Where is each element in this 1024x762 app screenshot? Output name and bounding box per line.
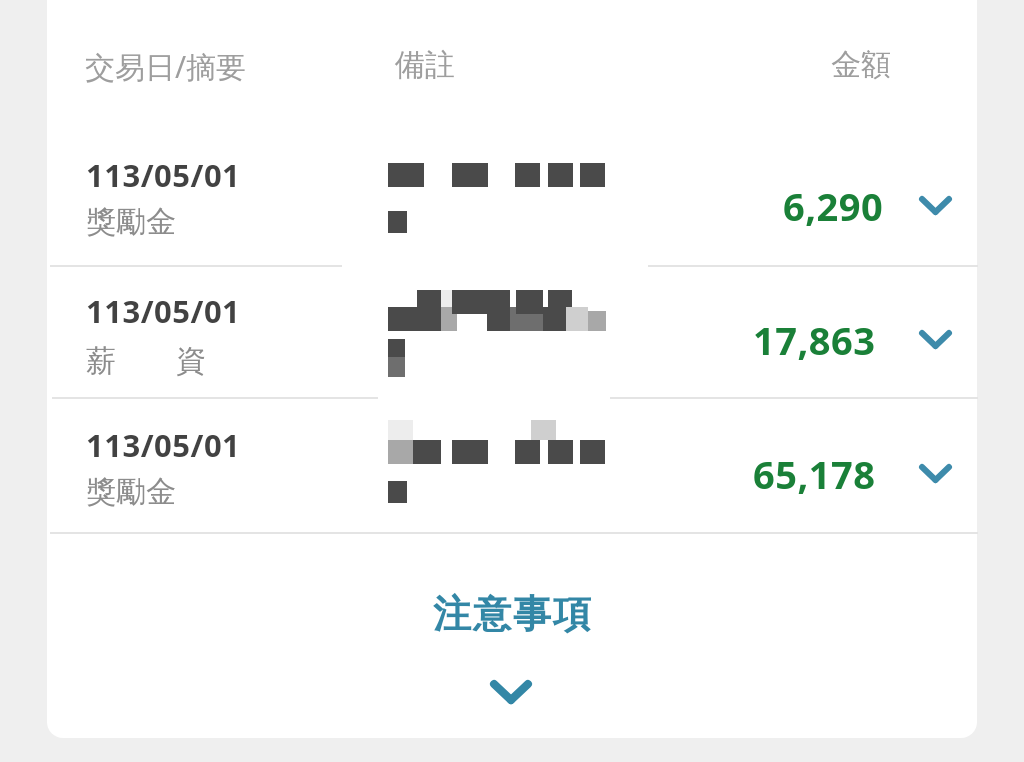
button[interactable] (47, 533, 977, 748)
staticText: 113/05/01 (86, 154, 241, 196)
staticText: 65,178 (753, 448, 876, 500)
staticText: 薪 資 (86, 339, 206, 380)
button[interactable] (47, 265, 977, 397)
button[interactable]: 展開注意事項 (490, 680, 532, 704)
button[interactable]: 展開 6,290 明細 (919, 196, 952, 215)
staticText: 6,290 (783, 180, 884, 232)
staticText: 113/05/01 (86, 424, 241, 466)
staticText: 交易日/摘要 (85, 46, 247, 87)
staticText: 17,863 (753, 314, 876, 366)
staticText: 113/05/01 (86, 290, 241, 332)
button[interactable] (47, 397, 977, 531)
staticText: 備註 (395, 46, 455, 84)
staticText: 獎勵金 (86, 203, 176, 241)
staticText: 金額 (831, 46, 891, 84)
button[interactable]: 展開 65,178 明細 (919, 464, 952, 483)
staticText: 注意事項 (432, 590, 592, 638)
staticText: 獎勵金 (86, 473, 176, 511)
button[interactable] (47, 130, 977, 262)
button[interactable]: 展開 17,863 明細 (919, 330, 952, 349)
